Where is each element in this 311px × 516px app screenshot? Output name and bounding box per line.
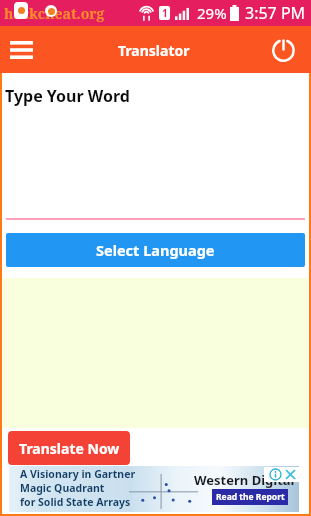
button[interactable]: Type Your Word [2,73,309,218]
button[interactable]: Read the Report [212,489,288,505]
button[interactable]: Translate Now [8,431,130,465]
button[interactable]: Select Language [6,233,305,267]
staticText: Type Your Word [5,85,130,107]
button[interactable]: Power [269,36,297,64]
button[interactable]: A Visionary in Gartner [9,466,299,512]
button[interactable]: Close ad [284,468,297,481]
button[interactable]: Ad info [269,468,282,481]
button[interactable]: Menu [7,35,35,65]
staticText: 29% [197,3,227,23]
staticText: 1 [162,6,168,20]
staticText: A Visionary in Gartner [20,467,136,481]
staticText: Western Digital [194,471,295,489]
staticText: 3:57 PM [245,2,306,24]
staticText: Magic Quadrant [20,481,105,495]
staticText: Translator [118,41,190,60]
staticText: for Solid State Arrays [20,495,131,509]
staticText: Translate Now [19,439,120,458]
staticText: Select Language [96,240,215,260]
staticText: hackcheat.org [4,4,105,23]
staticText: Read the Report [216,491,285,503]
